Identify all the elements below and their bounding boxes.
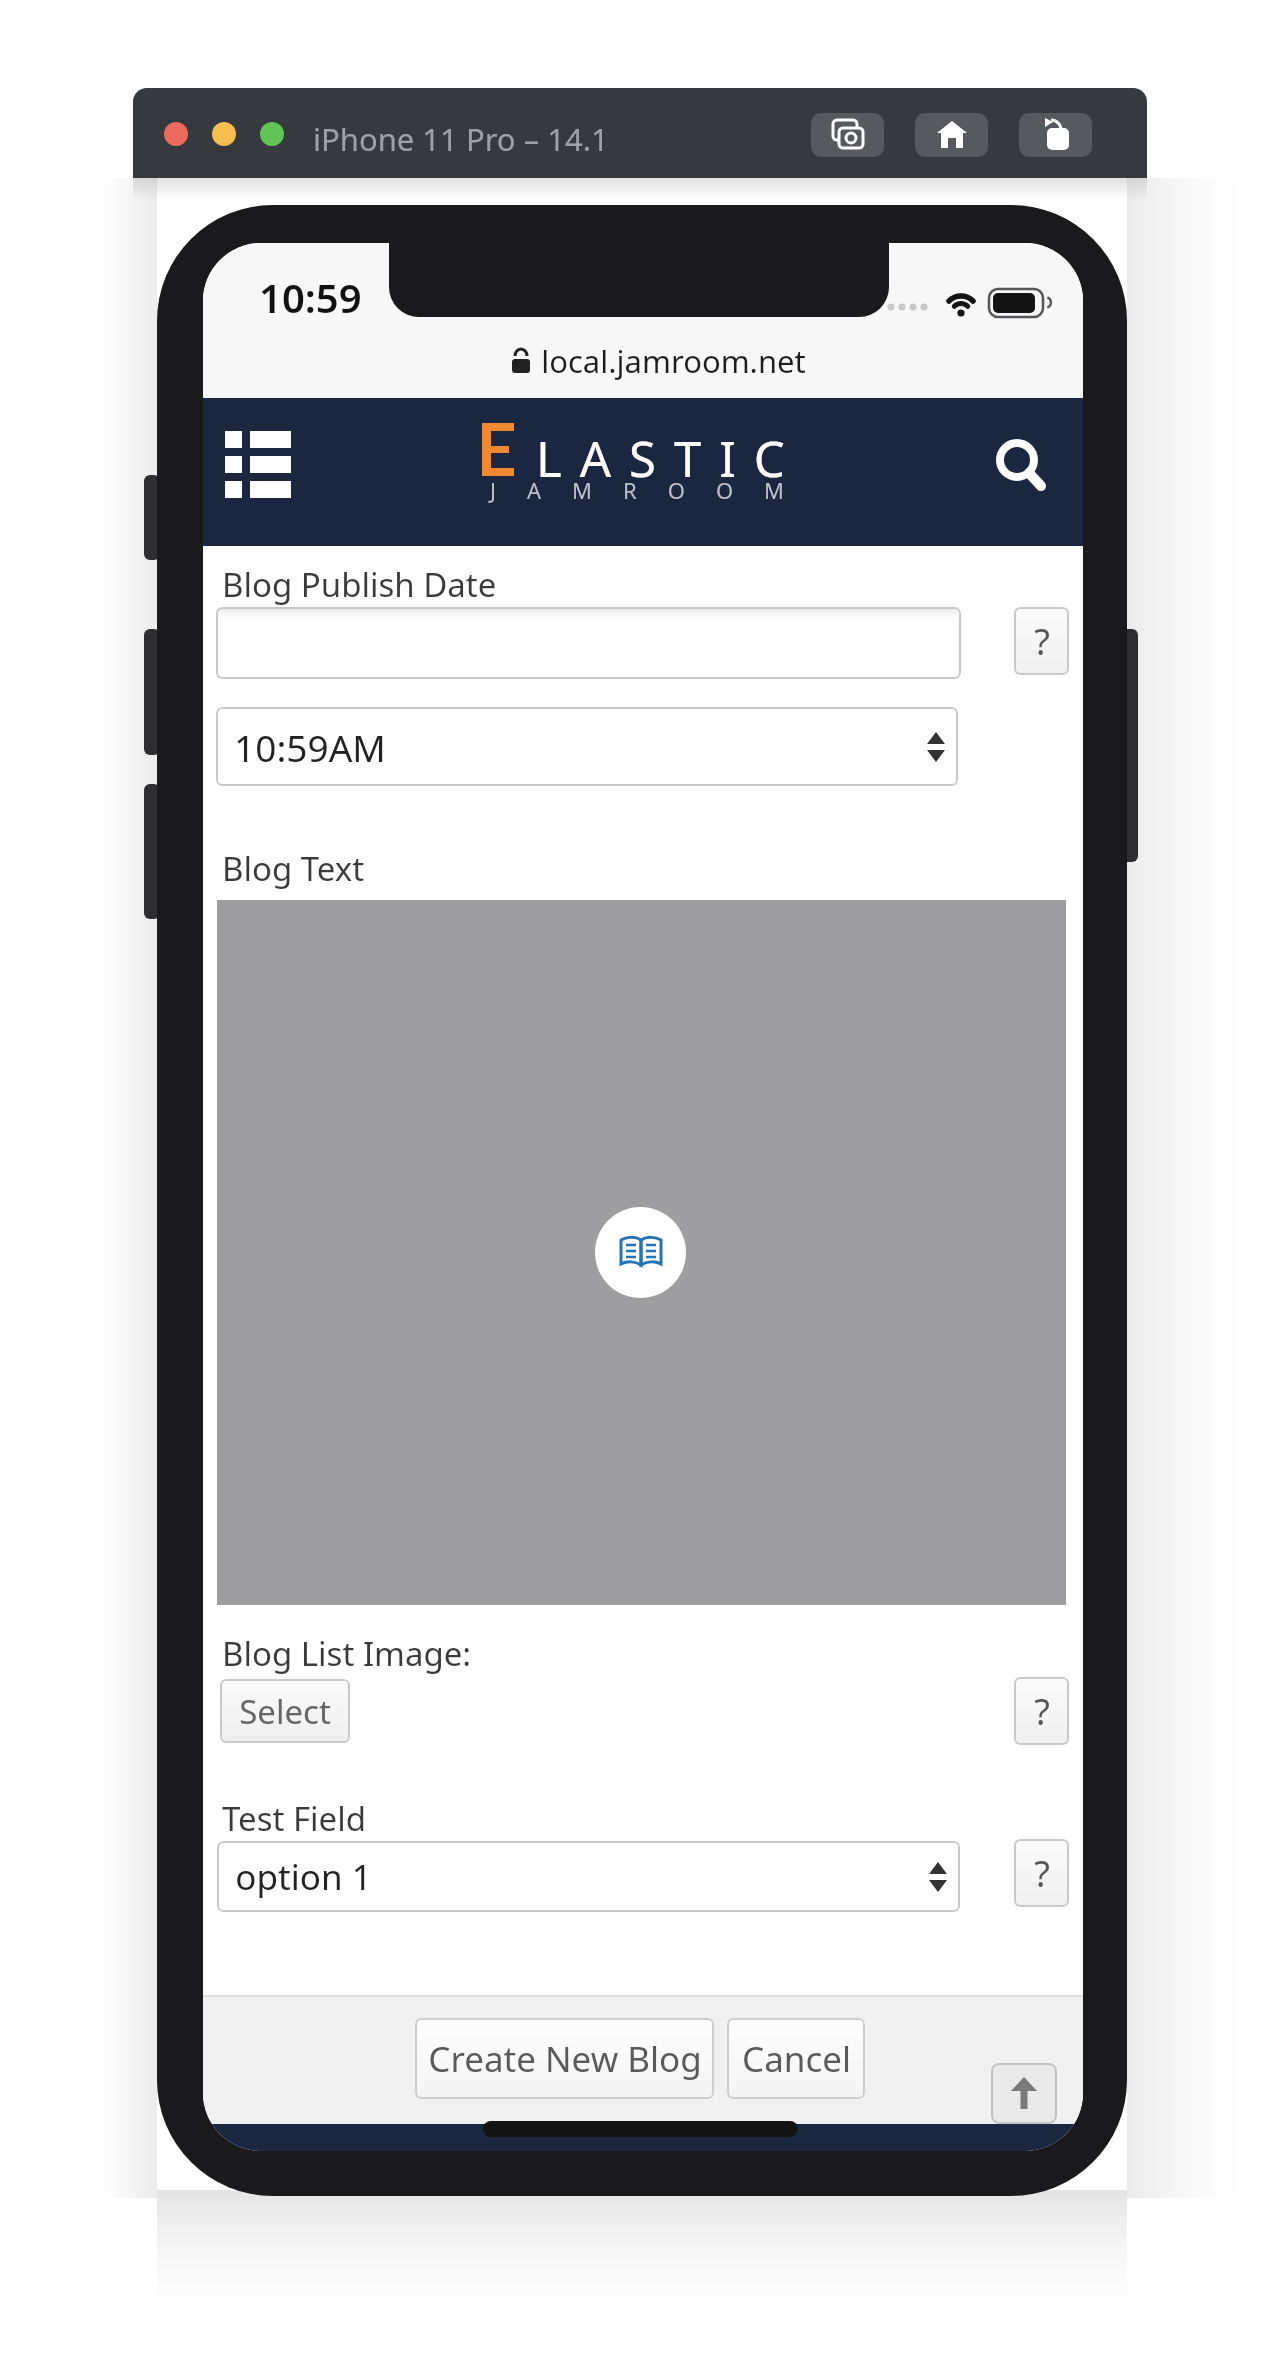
button[interactable] <box>991 2063 1057 2124</box>
staticText: JAMROOM <box>490 475 816 505</box>
button[interactable]: Select <box>220 1679 350 1743</box>
staticText: LASTIC <box>536 425 803 492</box>
staticText: option 1 <box>235 1853 372 1901</box>
staticText: Blog List Image: <box>222 1631 472 1676</box>
button[interactable]: option 1 <box>217 1841 960 1912</box>
button[interactable] <box>995 439 1055 499</box>
button[interactable]: ? <box>1014 1839 1069 1907</box>
button[interactable]: 10:59AM <box>216 707 958 786</box>
staticText: ? <box>1034 617 1050 666</box>
staticText: Create New Blog <box>428 2035 702 2083</box>
staticText: ? <box>1034 1687 1050 1736</box>
button[interactable] <box>915 113 988 157</box>
staticText: ? <box>1034 1849 1050 1898</box>
staticText: local.jamroom.net <box>541 340 806 382</box>
button[interactable]: Create New Blog <box>415 2018 714 2099</box>
staticText: Cancel <box>742 2035 851 2083</box>
button[interactable]: local.jamroom.net <box>203 331 1083 391</box>
button[interactable] <box>1019 113 1092 157</box>
staticText: 10:59 <box>259 270 362 324</box>
staticText: Blog Text <box>222 846 365 891</box>
button[interactable] <box>217 900 1066 1605</box>
staticText: Select <box>239 1689 331 1734</box>
staticText: iPhone 11 Pro – 14.1 <box>313 118 609 160</box>
button[interactable] <box>203 243 948 315</box>
button[interactable]: ? <box>1014 607 1069 675</box>
button[interactable]: ? <box>1014 1677 1069 1745</box>
button[interactable]: Cancel <box>727 2018 865 2099</box>
staticText: Test Field <box>222 1796 367 1841</box>
button[interactable] <box>225 431 291 498</box>
staticText: 10:59AM <box>234 722 386 772</box>
staticText: Blog Publish Date <box>222 562 497 607</box>
button[interactable] <box>811 113 884 157</box>
